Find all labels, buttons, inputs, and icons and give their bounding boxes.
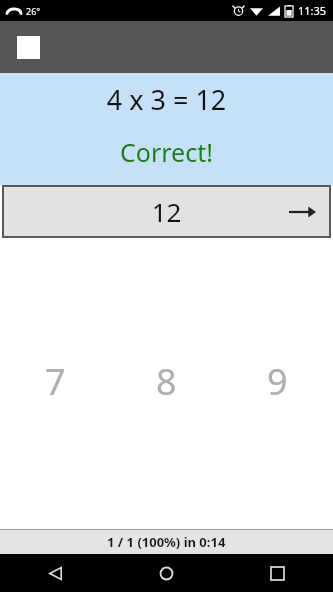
staticText: 9 — [267, 357, 288, 406]
button[interactable]: Back — [0, 554, 111, 592]
staticText: 11:35 — [298, 3, 327, 18]
staticText: Correct! — [0, 135, 333, 169]
button[interactable]: 7 — [0, 244, 111, 519]
button[interactable]: 12 — [2, 185, 331, 238]
staticText: 7 — [45, 357, 66, 406]
staticText: 8 — [156, 357, 177, 406]
staticText: 4 x 3 = 12 — [0, 81, 333, 118]
button[interactable]: Recent apps — [222, 554, 333, 592]
staticText: 12 — [2, 194, 331, 229]
button[interactable]: Home — [111, 554, 222, 592]
staticText: 1 / 1 (100%) in 0:14 — [107, 533, 226, 551]
button[interactable]: 8 — [111, 244, 222, 519]
other: Next — [287, 200, 317, 224]
staticText: 26° — [26, 5, 41, 17]
button[interactable]: 9 — [222, 244, 333, 519]
